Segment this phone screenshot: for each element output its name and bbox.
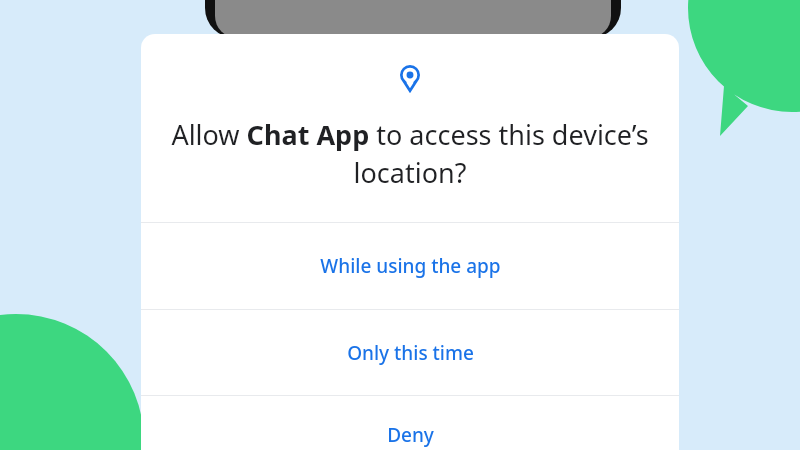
button[interactable]: Only this time <box>141 310 679 395</box>
button[interactable]: Deny <box>141 396 679 450</box>
staticText: While using the app <box>320 253 501 279</box>
staticText: Only this time <box>347 340 474 366</box>
staticText: Deny <box>387 422 434 448</box>
button[interactable]: While using the app <box>141 223 679 309</box>
staticText: Allow Chat App to access this device’s l… <box>163 116 657 191</box>
